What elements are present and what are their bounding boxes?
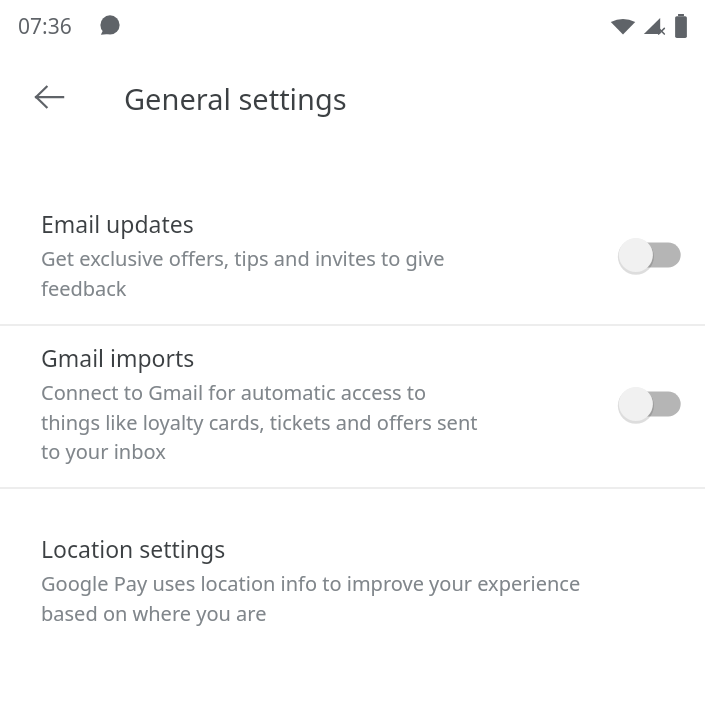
button[interactable]: Back <box>20 68 78 126</box>
staticText: Email updates <box>41 208 194 239</box>
button[interactable]: Email updates <box>0 194 705 324</box>
staticText: Google Pay uses location info to improve… <box>41 570 581 627</box>
button[interactable]: Location settings <box>0 489 705 647</box>
button[interactable]: Gmail imports <box>0 326 705 487</box>
button[interactable]: Toggle <box>613 231 685 279</box>
staticText: 07:36 <box>18 12 72 41</box>
staticText: Location settings <box>41 533 226 564</box>
button[interactable]: Toggle <box>613 380 685 428</box>
staticText: Connect to Gmail for automatic access to… <box>41 379 478 465</box>
staticText: General settings <box>124 79 347 118</box>
staticText: Gmail imports <box>41 342 195 373</box>
staticText: Get exclusive offers, tips and invites t… <box>41 245 445 302</box>
